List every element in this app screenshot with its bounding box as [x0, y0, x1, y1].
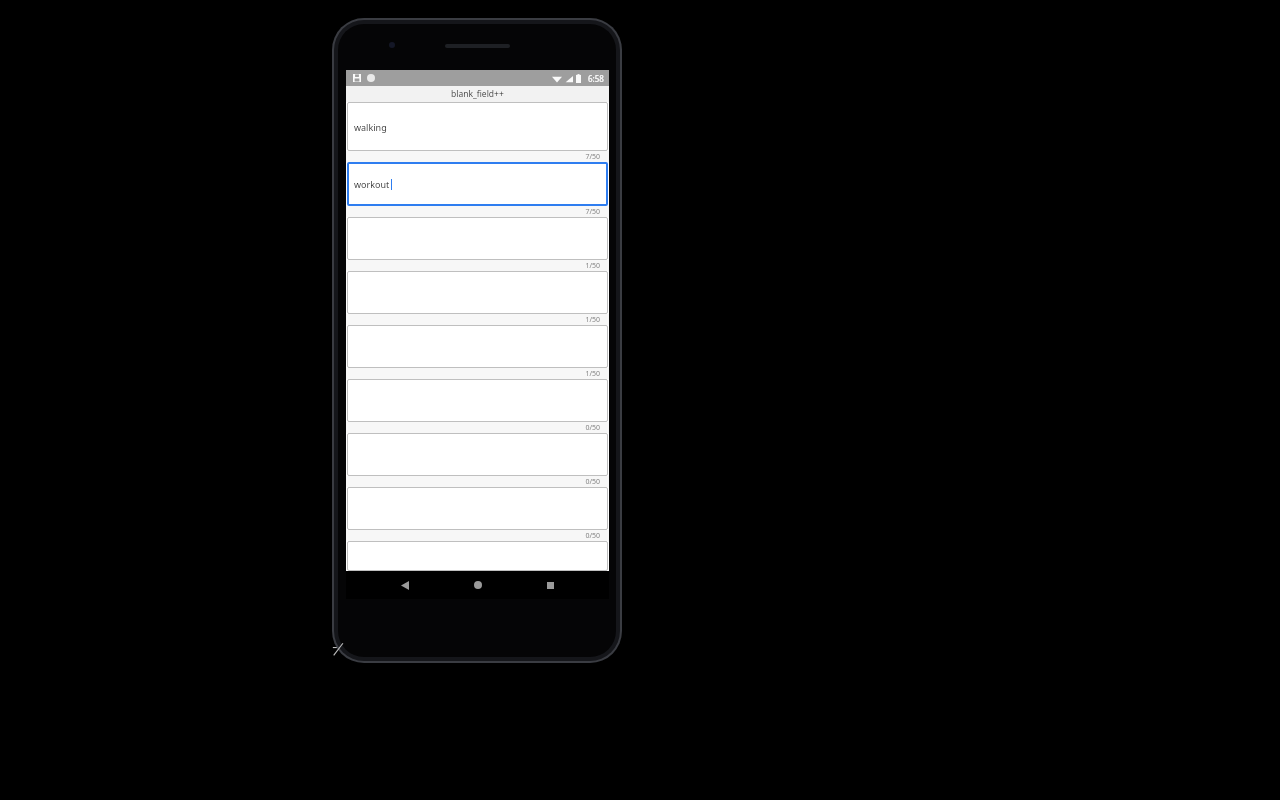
staticText: 0/50 [585, 477, 600, 487]
staticText: 1/50 [585, 261, 600, 271]
staticText: 1/50 [585, 315, 600, 325]
button[interactable] [347, 487, 608, 530]
button[interactable]: Back [392, 572, 418, 598]
staticText: 1/50 [585, 369, 600, 379]
staticText: 6:58 [588, 73, 604, 84]
button[interactable]: workout [347, 162, 608, 206]
button[interactable] [347, 541, 608, 571]
button[interactable]: walking [347, 102, 608, 151]
button[interactable] [347, 271, 608, 314]
staticText: walking [354, 121, 387, 133]
staticText: workout [354, 178, 390, 190]
button[interactable] [347, 379, 608, 422]
button[interactable] [347, 433, 608, 476]
button[interactable]: Home [465, 572, 491, 598]
staticText: blank_field++ [451, 88, 504, 100]
button[interactable] [347, 325, 608, 368]
staticText: 0/50 [585, 531, 600, 541]
staticText: 0/50 [585, 423, 600, 433]
button[interactable]: Recent apps [537, 572, 563, 598]
staticText: 7/50 [585, 152, 600, 162]
staticText: 7/50 [585, 207, 600, 217]
button[interactable] [347, 217, 608, 260]
